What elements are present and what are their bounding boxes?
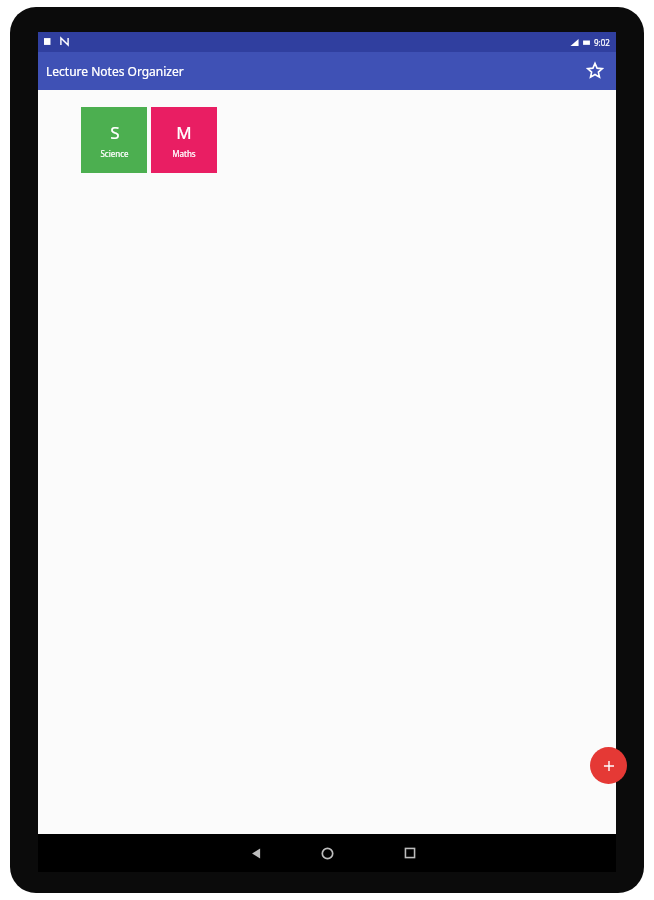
staticText: Science [100, 148, 129, 159]
staticText: 9:02 [594, 37, 610, 48]
staticText: M [176, 121, 192, 144]
button[interactable]: S [81, 107, 147, 173]
button[interactable]: M [151, 107, 217, 173]
button[interactable]: Recent apps [380, 834, 440, 872]
button[interactable]: Favorites [580, 56, 610, 86]
staticText: Maths [172, 148, 196, 159]
staticText: Lecture Notes Organizer [46, 63, 184, 79]
staticText: S [110, 121, 120, 144]
button[interactable]: Back [226, 834, 286, 872]
button[interactable]: Add note [590, 747, 627, 784]
button[interactable]: Home [297, 834, 357, 872]
